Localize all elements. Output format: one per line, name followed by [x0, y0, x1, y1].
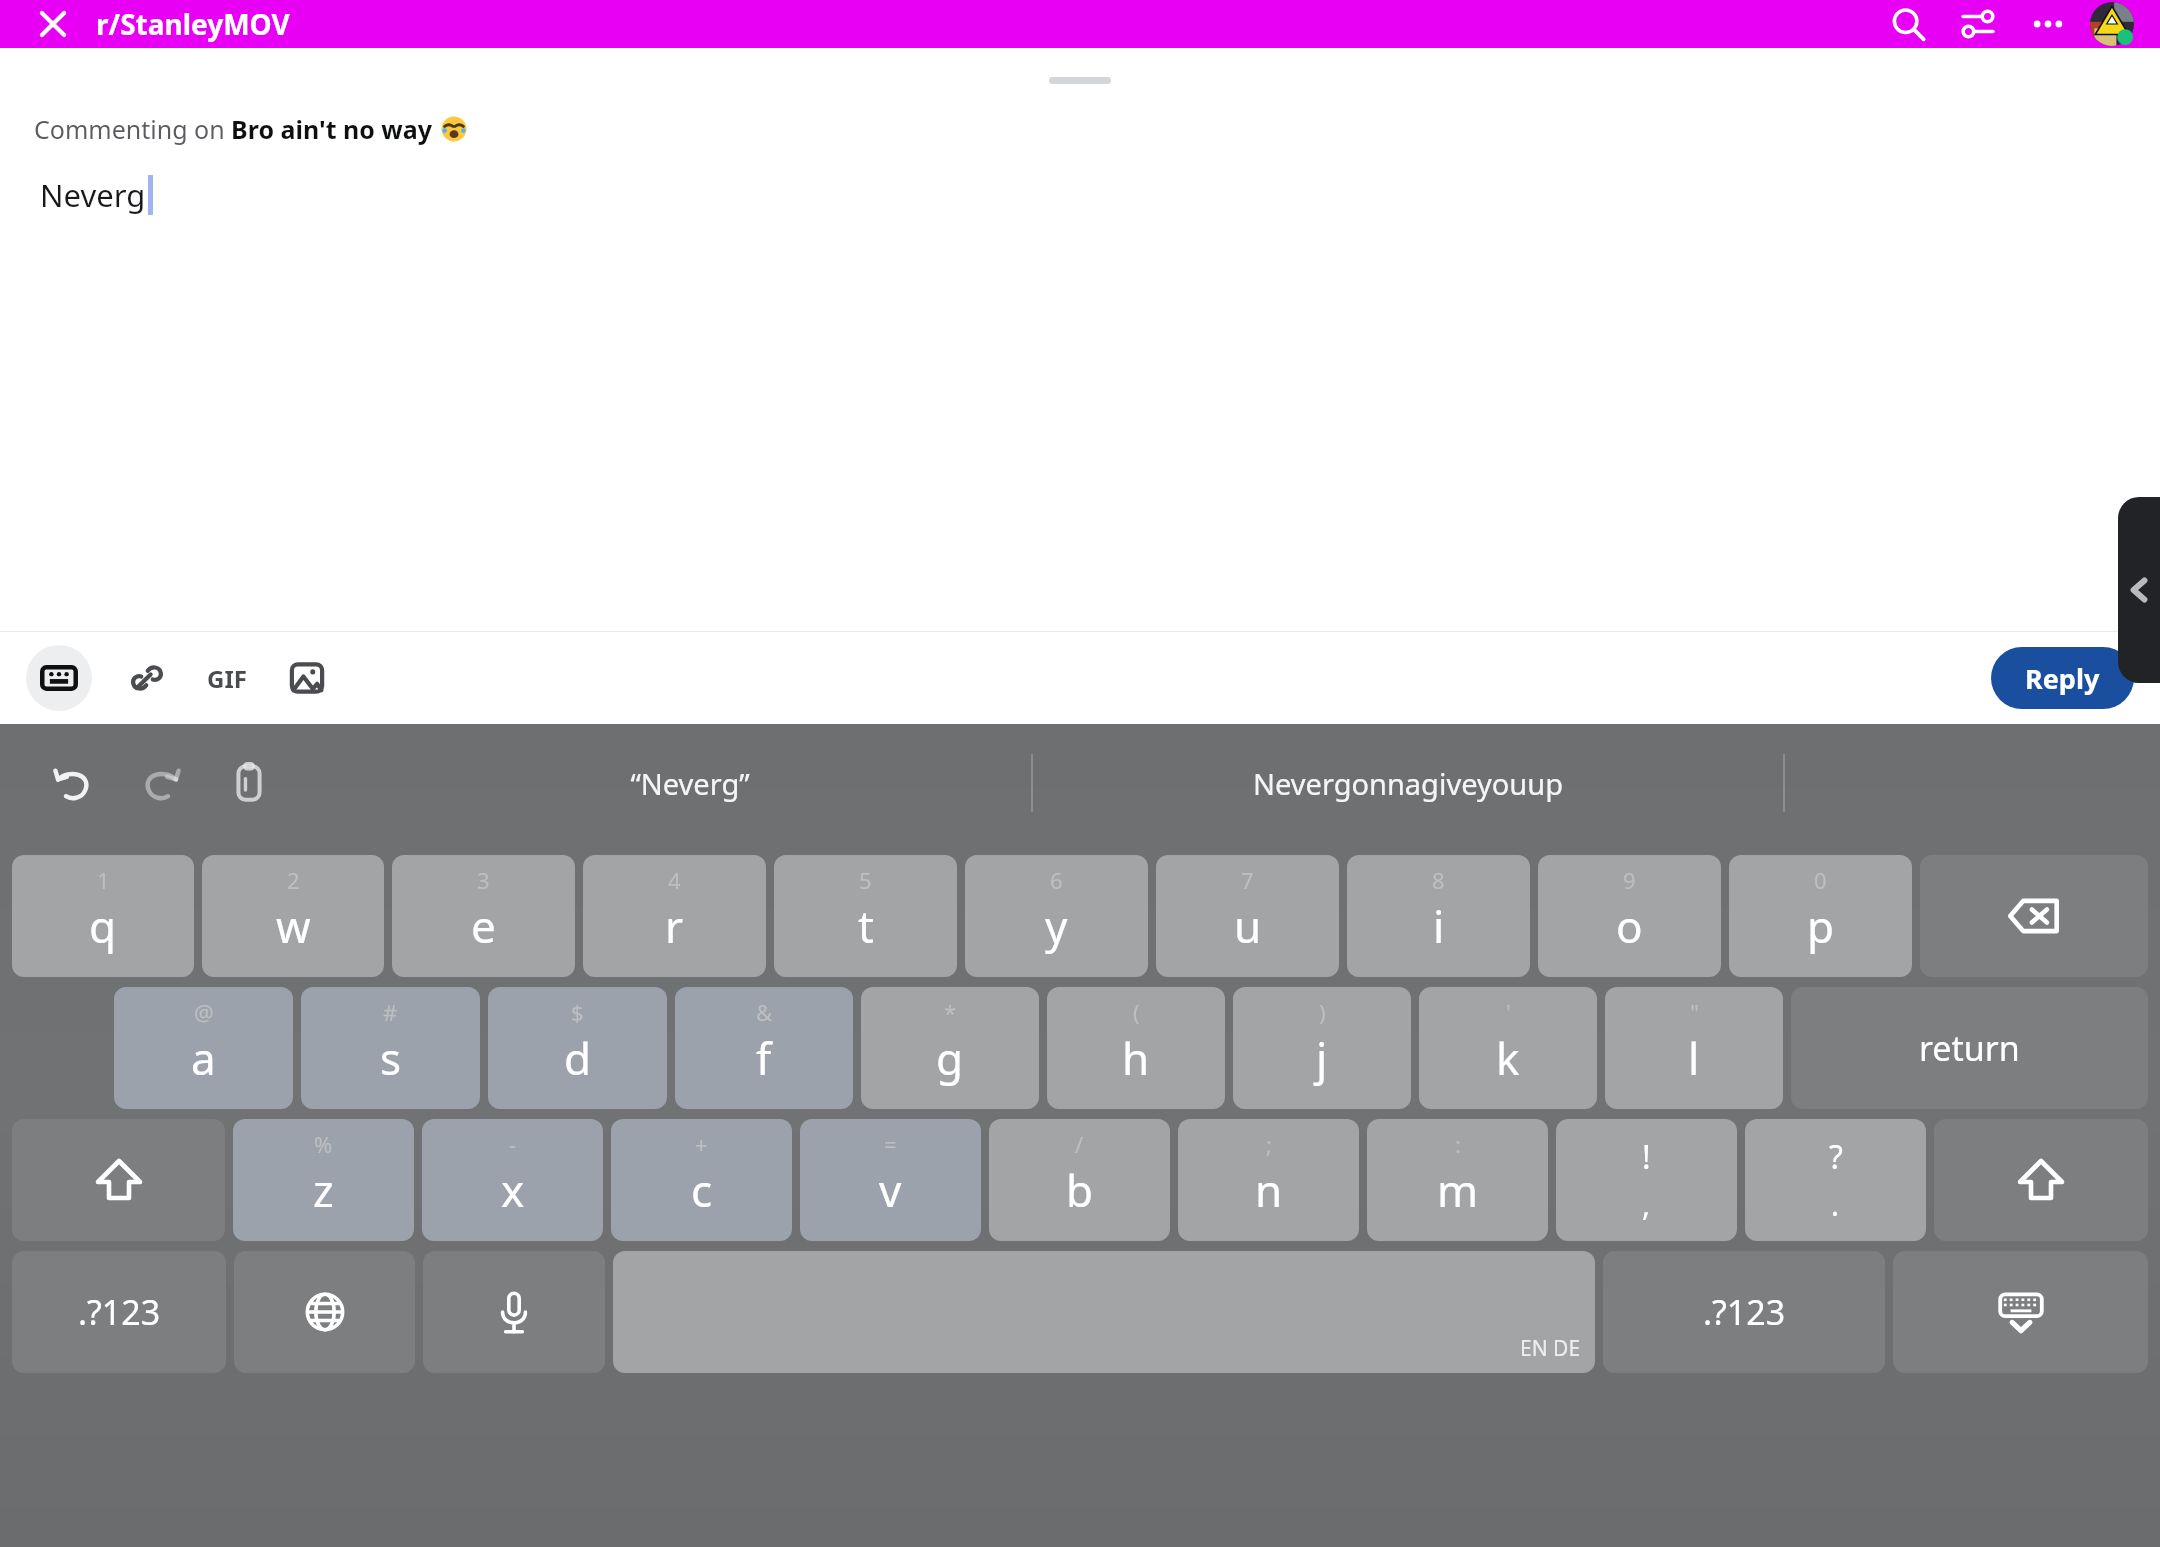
staticText: a: [191, 1028, 216, 1088]
button[interactable]: /: [989, 1119, 1170, 1241]
staticText: 1: [97, 865, 110, 895]
button[interactable]: Hide keyboard: [1893, 1251, 2148, 1373]
button[interactable]: Clipboard: [216, 750, 282, 816]
button[interactable]: Sort and filter: [1948, 0, 2008, 48]
button[interactable]: =: [800, 1119, 981, 1241]
staticText: k: [1496, 1028, 1520, 1088]
button[interactable]: ": [1605, 987, 1783, 1109]
staticText: ': [1506, 997, 1511, 1027]
staticText: c: [691, 1160, 713, 1220]
button[interactable]: 6: [965, 855, 1148, 977]
button[interactable]: &: [675, 987, 853, 1109]
button[interactable]: Reply: [1991, 647, 2134, 709]
button[interactable]: 9: [1538, 855, 1721, 977]
button[interactable]: -: [422, 1119, 603, 1241]
staticText: r: [665, 896, 684, 956]
staticText: l: [1688, 1028, 1700, 1088]
button[interactable]: :: [1367, 1119, 1548, 1241]
button[interactable]: .?123: [12, 1251, 226, 1373]
staticText: y: [1045, 896, 1068, 956]
staticText: o: [1616, 896, 1643, 956]
button[interactable]: ?: [1745, 1119, 1926, 1241]
button[interactable]: 0: [1729, 855, 1912, 977]
button[interactable]: Redo: [128, 750, 194, 816]
staticText: /: [1075, 1129, 1084, 1159]
staticText: 4: [668, 865, 681, 895]
button[interactable]: Shift: [12, 1119, 225, 1241]
staticText: 5: [859, 865, 872, 895]
button[interactable]: !: [1556, 1119, 1737, 1241]
staticText: .?123: [1703, 1289, 1786, 1335]
staticText: t: [858, 896, 874, 956]
button[interactable]: More options: [2018, 0, 2078, 48]
staticText: ,: [1642, 1184, 1651, 1225]
button[interactable]: Backspace: [1920, 855, 2148, 977]
button[interactable]: Nevergonnagiveyouup: [1033, 724, 1783, 842]
staticText: EN DE: [1520, 1334, 1581, 1363]
button[interactable]: Voice input: [423, 1251, 605, 1373]
button[interactable]: @: [114, 987, 293, 1109]
button[interactable]: ': [1419, 987, 1597, 1109]
button[interactable]: Keyboard: [26, 645, 92, 711]
staticText: +: [695, 1129, 708, 1159]
staticText: $: [571, 997, 584, 1027]
button[interactable]: .?123: [1603, 1251, 1885, 1373]
staticText: e: [471, 896, 496, 956]
button[interactable]: 3: [392, 855, 575, 977]
staticText: (: [1133, 997, 1140, 1027]
button[interactable]: GIF: [196, 647, 258, 709]
staticText: g: [936, 1028, 964, 1088]
button[interactable]: 8: [1347, 855, 1530, 977]
button[interactable]: 5: [774, 855, 957, 977]
staticText: x: [501, 1160, 525, 1220]
button[interactable]: 1: [12, 855, 194, 977]
staticText: 3: [477, 865, 490, 895]
button[interactable]: Undo: [40, 750, 106, 816]
button[interactable]: *: [861, 987, 1039, 1109]
button[interactable]: Add link: [116, 647, 178, 709]
button[interactable]: return: [1791, 987, 2148, 1109]
staticText: Commenting on Bro ain't no way: [34, 112, 433, 146]
button[interactable]: Close: [26, 0, 80, 48]
staticText: u: [1234, 896, 1262, 956]
button[interactable]: ): [1233, 987, 1411, 1109]
button[interactable]: ;: [1178, 1119, 1359, 1241]
button[interactable]: #: [301, 987, 480, 1109]
staticText: #: [383, 997, 398, 1027]
staticText: 2: [287, 865, 300, 895]
button[interactable]: Change language: [234, 1251, 415, 1373]
staticText: p: [1807, 896, 1835, 956]
staticText: 7: [1241, 865, 1254, 895]
button[interactable]: 2: [202, 855, 384, 977]
button[interactable]: +: [611, 1119, 792, 1241]
staticText: Neverg: [40, 174, 146, 216]
staticText: Reply: [2025, 660, 2100, 697]
button[interactable]: Expand panel: [2118, 497, 2160, 683]
button[interactable]: Profile: [2090, 2, 2134, 46]
staticText: ": [1690, 997, 1699, 1027]
staticText: f: [756, 1028, 772, 1088]
button[interactable]: “Neverg”: [348, 724, 1031, 842]
staticText: h: [1122, 1028, 1150, 1088]
staticText: j: [1316, 1028, 1328, 1088]
button[interactable]: 7: [1156, 855, 1339, 977]
button[interactable]: Shift right: [1934, 1119, 2148, 1241]
staticText: r/StanleyMOV: [96, 5, 290, 43]
staticText: -: [509, 1129, 517, 1159]
button[interactable]: %: [233, 1119, 414, 1241]
staticText: !: [1642, 1135, 1651, 1179]
staticText: ): [1319, 997, 1326, 1027]
button[interactable]: Space: [613, 1251, 1595, 1373]
button[interactable]: $: [488, 987, 667, 1109]
staticText: *: [944, 997, 957, 1027]
staticText: z: [313, 1160, 334, 1220]
button[interactable]: Add image: [276, 647, 338, 709]
staticText: ;: [1266, 1129, 1272, 1159]
button[interactable]: 4: [583, 855, 766, 977]
staticText: @: [194, 997, 214, 1027]
staticText: i: [1433, 896, 1445, 956]
button[interactable]: (: [1047, 987, 1225, 1109]
staticText: n: [1255, 1160, 1283, 1220]
button[interactable]: Search: [1878, 0, 1938, 48]
staticText: 8: [1432, 865, 1445, 895]
